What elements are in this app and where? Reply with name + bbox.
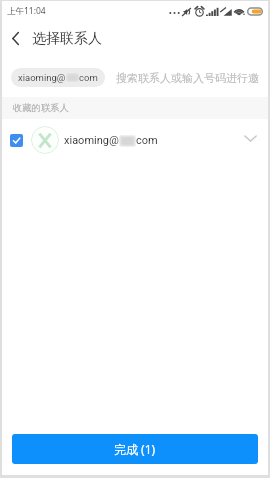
staticText: 选择联系人 [32,30,102,48]
button[interactable]: Back [0,23,30,53]
button[interactable]: xiaoming@ [11,68,105,87]
staticText: 搜索联系人或输入号码进行邀请 [116,71,268,85]
staticText: xiaoming@ [64,134,119,147]
staticText: 收藏的联系人 [13,102,69,114]
staticText: 完成 (1) [114,441,156,457]
staticText: 上午11:04 [7,5,46,17]
staticText: xiaoming@ [18,72,66,83]
button[interactable]: Expand [238,126,262,150]
staticText: com [136,134,158,147]
staticText: com [79,72,98,83]
button[interactable]: 完成 (1) [12,434,258,464]
button[interactable]: xiaoming@ [2,119,268,161]
